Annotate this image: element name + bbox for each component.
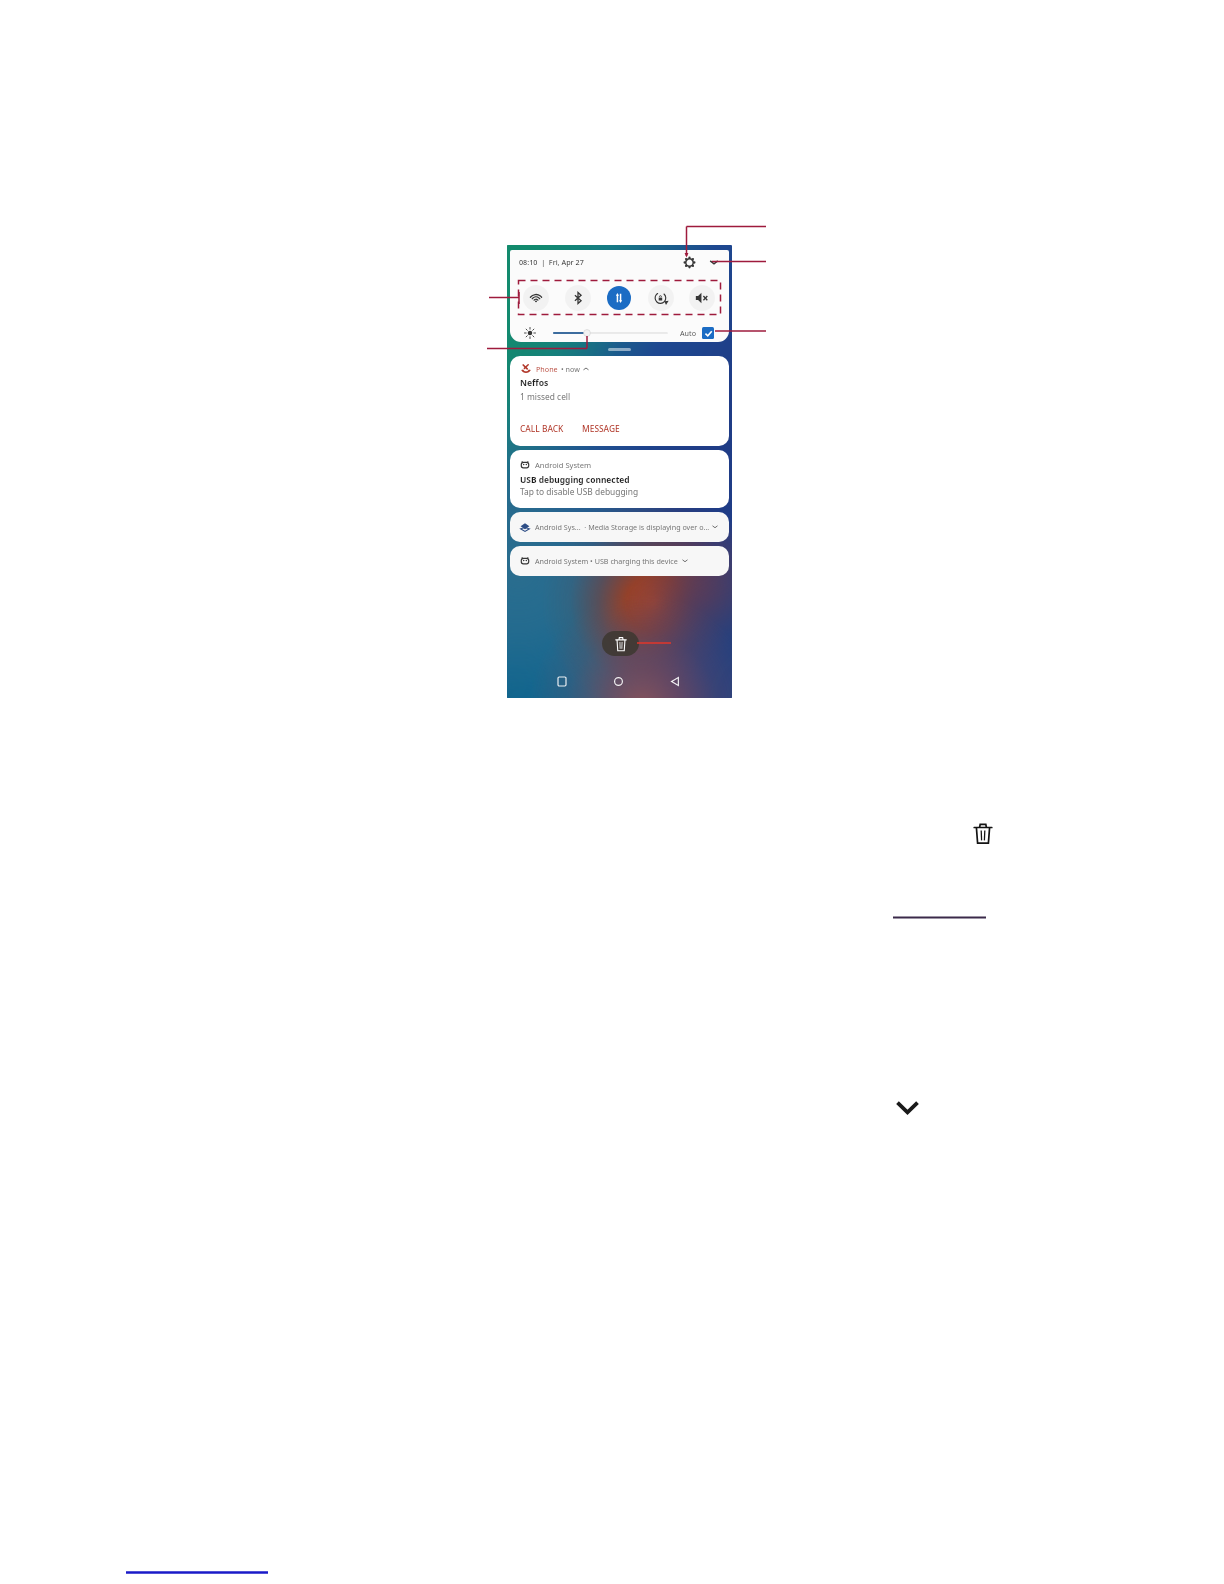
button[interactable]: Mobile data bbox=[607, 286, 631, 310]
button[interactable]: Auto brightness bbox=[702, 327, 714, 339]
staticText: Phone bbox=[536, 364, 558, 374]
staticText: Neffos bbox=[520, 377, 549, 389]
button[interactable]: Recents bbox=[552, 671, 572, 691]
button[interactable]: CALL BACK bbox=[519, 422, 565, 435]
button[interactable]: Delete bbox=[973, 822, 993, 845]
button[interactable]: Auto rotate bbox=[648, 285, 674, 311]
button[interactable]: Mute bbox=[689, 285, 715, 311]
staticText: Auto bbox=[680, 328, 696, 338]
staticText: Tap to disable USB debugging bbox=[520, 486, 639, 497]
button[interactable]: MESSAGE bbox=[581, 422, 621, 435]
button[interactable]: Settings bbox=[681, 254, 697, 270]
button[interactable]: Expand bbox=[895, 1096, 920, 1118]
button[interactable]: Wi-Fi bbox=[523, 285, 549, 311]
button[interactable]: Android System • USB charging this devic… bbox=[510, 546, 729, 576]
staticText: • now bbox=[561, 364, 580, 374]
staticText: Android System • USB charging this devic… bbox=[535, 556, 678, 566]
staticText: 1 missed cell bbox=[520, 391, 571, 402]
button[interactable]: Phone bbox=[510, 356, 729, 446]
button[interactable]: Home bbox=[608, 671, 628, 691]
button[interactable]: Bluetooth bbox=[565, 285, 591, 311]
button[interactable]: Brightness bbox=[552, 327, 667, 339]
staticText: Android Sys... · Media Storage is displa… bbox=[535, 522, 710, 532]
button[interactable]: Clear all notifications bbox=[602, 631, 639, 656]
button[interactable]: Collapse panel bbox=[707, 255, 721, 269]
button[interactable]: Android System bbox=[510, 450, 729, 508]
button[interactable]: Android Sys... · Media Storage is displa… bbox=[510, 512, 729, 542]
staticText: 08:10 | Fri, Apr 27 bbox=[519, 257, 584, 267]
staticText: USB debugging connected bbox=[520, 474, 630, 485]
button[interactable]: Back bbox=[665, 671, 685, 691]
staticText: CALL BACK bbox=[520, 423, 564, 434]
staticText: Android System bbox=[535, 460, 592, 470]
staticText: MESSAGE bbox=[582, 423, 620, 434]
